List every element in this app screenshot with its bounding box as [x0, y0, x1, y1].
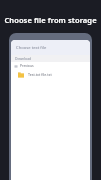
staticText: Choose text file — [16, 45, 47, 51]
button[interactable]: Parent folder — [11, 62, 90, 69]
button[interactable]: Choose text file — [11, 40, 90, 55]
staticText: Test.txt file.txt — [28, 72, 52, 77]
staticText: Choose file from storage — [4, 15, 97, 25]
button[interactable]: Folder — [11, 69, 90, 80]
other: Parent folder — [14, 64, 18, 68]
staticText: Download — [15, 56, 32, 61]
button[interactable]: Download — [11, 55, 90, 62]
staticText: Previous — [20, 63, 34, 68]
other: Folder — [18, 72, 24, 78]
